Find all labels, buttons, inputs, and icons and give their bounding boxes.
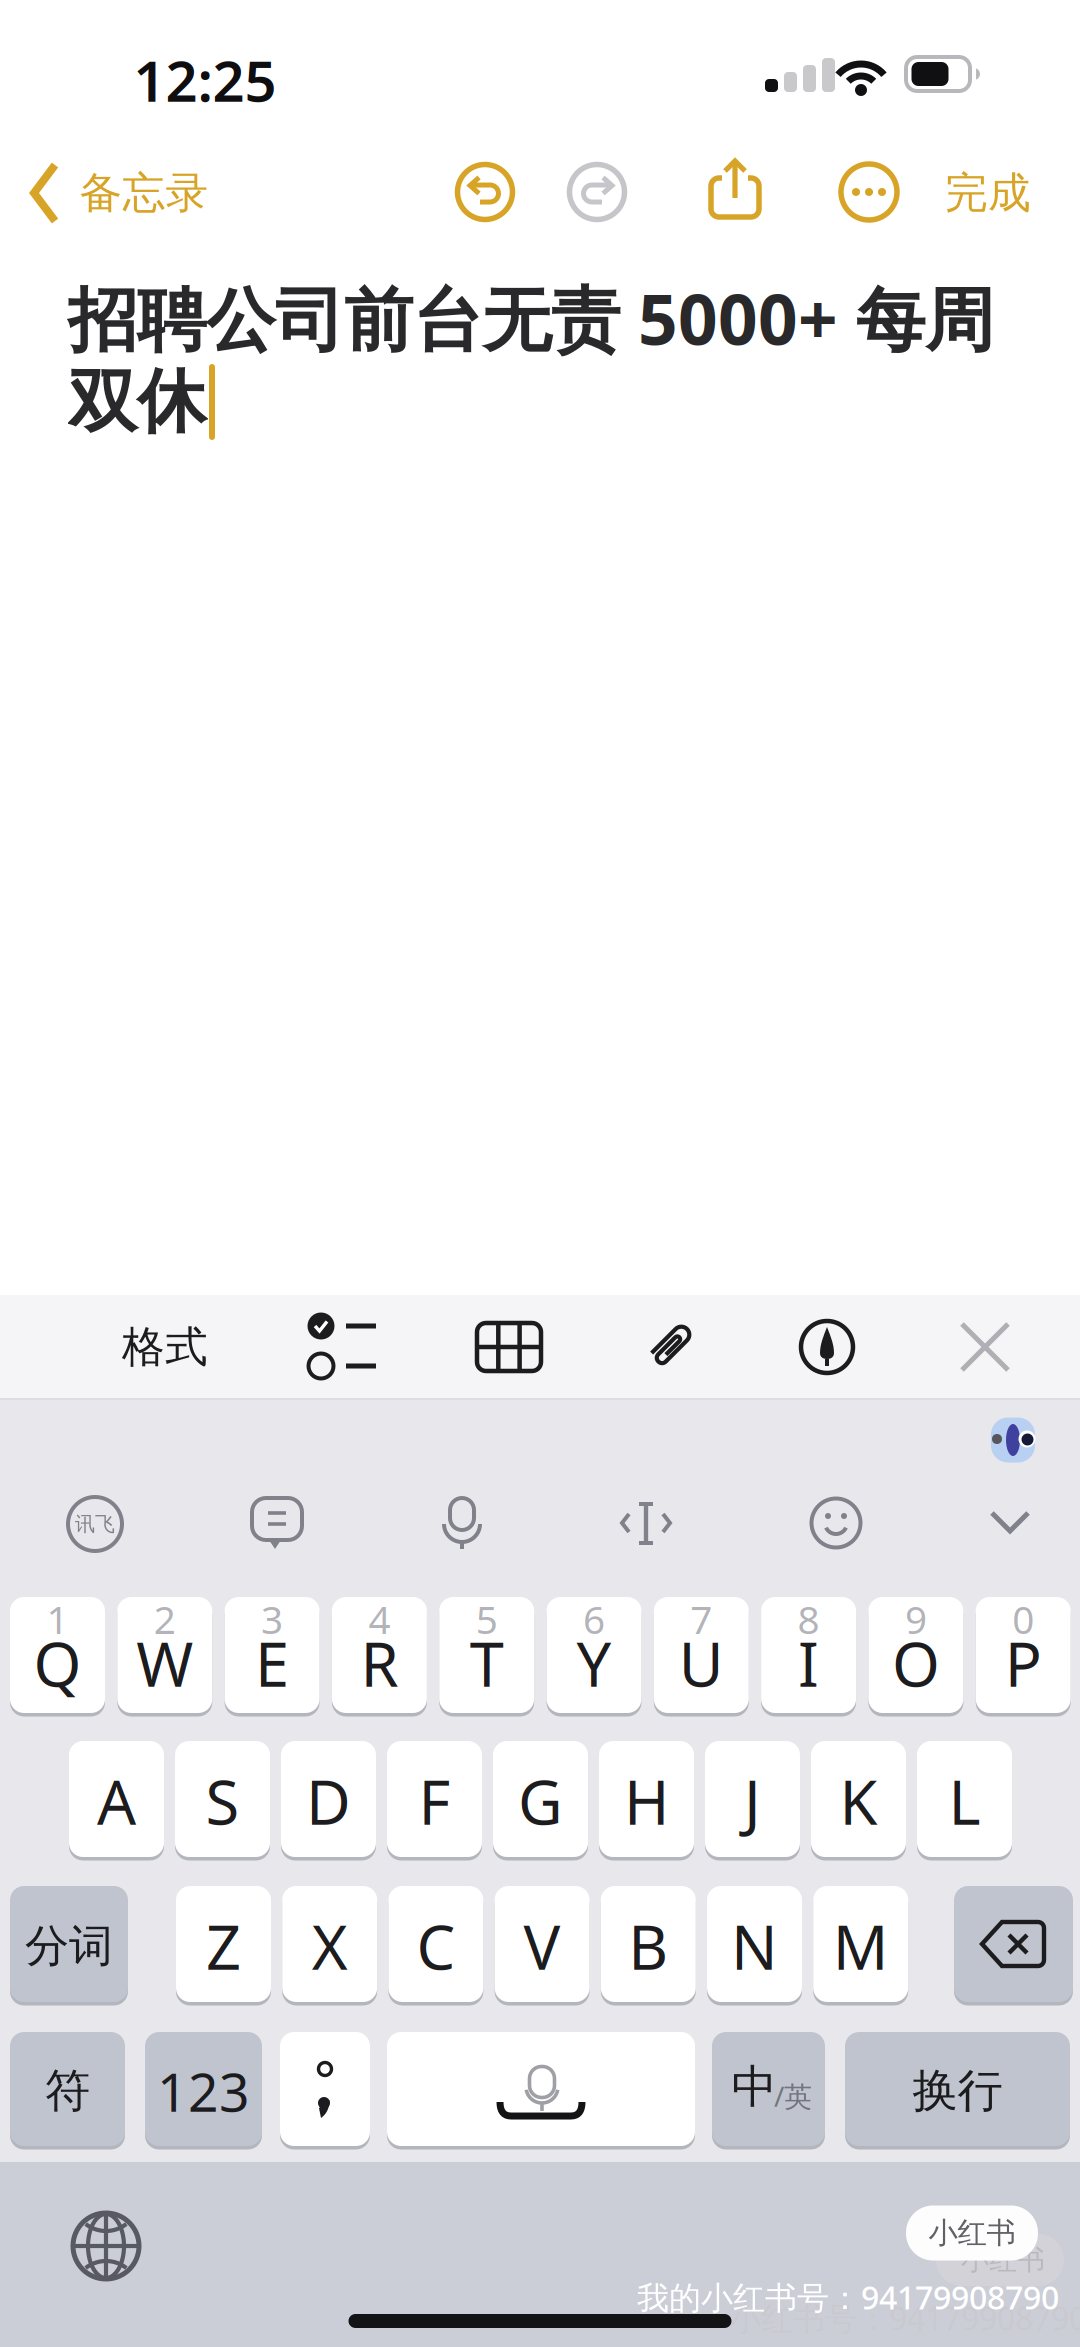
button[interactable]: 备忘录 <box>28 162 238 226</box>
button[interactable]: 1 <box>10 1597 105 1717</box>
button[interactable]: 2 <box>117 1597 212 1717</box>
button[interactable]: S <box>175 1741 270 1861</box>
button[interactable]: Phrases <box>251 1497 305 1553</box>
staticText: 4 <box>368 1593 390 1645</box>
button[interactable]: M <box>813 1886 908 2006</box>
button[interactable]: Next keyboard <box>71 2211 141 2281</box>
button[interactable]: 换行 <box>845 2032 1070 2150</box>
staticText: 备忘录 <box>79 167 208 219</box>
button[interactable]: Share <box>705 159 765 225</box>
button[interactable]: G <box>493 1741 588 1861</box>
staticText: F <box>418 1760 450 1842</box>
staticText: /英 <box>774 2077 812 2115</box>
button[interactable]: C <box>388 1886 483 2006</box>
button[interactable]: L <box>917 1741 1012 1861</box>
button[interactable]: 完成 <box>923 163 1053 223</box>
staticText: 格式 <box>122 1321 208 1373</box>
button[interactable]: Z <box>176 1886 271 2006</box>
staticText: 3 <box>261 1593 283 1645</box>
staticText: 讯飞 <box>75 1512 115 1536</box>
button[interactable]: 4 <box>332 1597 427 1717</box>
staticText: L <box>948 1760 980 1842</box>
staticText: C <box>416 1905 455 1987</box>
button[interactable]: N <box>707 1886 802 2006</box>
staticText: 6 <box>583 1593 605 1645</box>
staticText: 1 <box>46 1593 68 1645</box>
staticText: 招聘公司前台无责 5000+ 每周 <box>68 272 994 364</box>
staticText: 小红书号：94179908790 <box>729 2297 1080 2339</box>
staticText: Y <box>576 1622 611 1704</box>
staticText: Q <box>33 1622 81 1704</box>
staticText: Z <box>206 1905 241 1987</box>
button[interactable]: 8 <box>761 1597 856 1717</box>
staticText: 0 <box>1012 1593 1034 1645</box>
button[interactable]: Dictation <box>440 1497 484 1549</box>
button[interactable]: 123 <box>145 2032 262 2150</box>
button[interactable]: X <box>282 1886 377 2006</box>
button[interactable]: Markup <box>799 1319 855 1375</box>
button[interactable]: 6 <box>546 1597 641 1717</box>
button[interactable]: A <box>69 1741 164 1861</box>
button[interactable]: 0 <box>976 1597 1071 1717</box>
button[interactable]: iFlytek <box>67 1496 123 1552</box>
button[interactable]: J <box>705 1741 800 1861</box>
button[interactable]: Cursor <box>621 1502 671 1546</box>
button[interactable]: Delete <box>954 1886 1073 2006</box>
button[interactable]: Undo <box>454 161 516 223</box>
staticText: N <box>731 1905 778 1987</box>
staticText: W <box>136 1622 193 1704</box>
staticText: X <box>312 1905 348 1987</box>
staticText: A <box>97 1760 136 1842</box>
staticText: B <box>628 1905 668 1987</box>
button[interactable]: F <box>387 1741 482 1861</box>
button[interactable]: B <box>601 1886 696 2006</box>
button[interactable]: Table <box>476 1322 542 1372</box>
button[interactable]: Space <box>387 2032 695 2150</box>
button[interactable]: D <box>281 1741 376 1861</box>
staticText: 12:25 <box>133 43 276 117</box>
button[interactable]: 5 <box>439 1597 534 1717</box>
staticText: 符 <box>45 2063 90 2119</box>
button[interactable]: Assistant <box>991 1416 1037 1464</box>
staticText: 8 <box>798 1593 820 1645</box>
staticText: 9 <box>905 1593 927 1645</box>
button[interactable]: 3 <box>225 1597 320 1717</box>
button[interactable]: Redo <box>566 161 628 223</box>
button[interactable]: More <box>838 161 900 223</box>
button[interactable]: Checklist <box>306 1317 382 1379</box>
button[interactable]: Attach <box>641 1317 699 1375</box>
staticText: G <box>518 1760 563 1842</box>
staticText: 分词 <box>25 1919 113 1973</box>
staticText: 7 <box>690 1593 712 1645</box>
staticText: R <box>360 1622 398 1704</box>
button[interactable]: Dismiss <box>960 1322 1010 1372</box>
button[interactable]: K <box>811 1741 906 1861</box>
staticText: J <box>744 1760 761 1842</box>
staticText: D <box>306 1760 351 1842</box>
staticText: 我的小红书号：94179908790 <box>637 2276 1059 2318</box>
button[interactable]: Emoji <box>810 1497 862 1549</box>
button[interactable]: 符 <box>10 2032 125 2150</box>
staticText: 完成 <box>945 167 1031 219</box>
staticText: 双休 <box>68 359 206 445</box>
staticText: I <box>798 1622 819 1704</box>
button[interactable]: 分词 <box>10 1886 128 2006</box>
button[interactable]: 7 <box>654 1597 749 1717</box>
staticText: U <box>679 1622 724 1704</box>
staticText: V <box>524 1905 561 1987</box>
staticText: 2 <box>154 1593 176 1645</box>
button[interactable]: Chinese / English <box>712 2032 825 2150</box>
button[interactable]: V <box>495 1886 590 2006</box>
staticText: T <box>470 1622 504 1704</box>
staticText: E <box>255 1622 289 1704</box>
staticText: 中 <box>731 2059 776 2115</box>
staticText: K <box>839 1760 877 1842</box>
staticText: S <box>205 1760 239 1842</box>
staticText: O <box>892 1622 940 1704</box>
button[interactable]: H <box>599 1741 694 1861</box>
staticText: H <box>624 1760 669 1842</box>
button[interactable]: 9 <box>868 1597 963 1717</box>
button[interactable]: Collapse <box>990 1511 1030 1535</box>
button[interactable]: 格式 <box>80 1302 250 1392</box>
button[interactable]: Punctuation <box>280 2032 370 2150</box>
